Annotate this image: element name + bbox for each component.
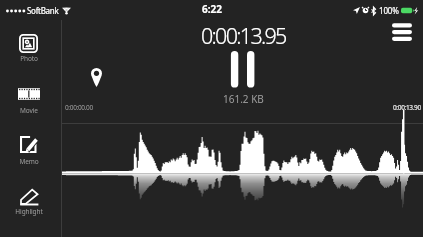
staticText: 0:00:13.90 <box>393 103 421 112</box>
button[interactable]: Photo <box>0 34 57 63</box>
button[interactable]: Memo <box>0 136 57 166</box>
staticText: Movie <box>20 106 38 115</box>
button[interactable]: Menu <box>392 21 412 42</box>
staticText: Photo <box>20 54 38 63</box>
staticText: 161.2 KB <box>223 92 264 106</box>
staticText: Memo <box>19 157 39 166</box>
staticText: 0:00:13.95 <box>201 21 286 50</box>
button[interactable]: Highlight <box>0 188 57 216</box>
staticText: 6:22 <box>202 2 222 16</box>
button[interactable]: Movie <box>0 86 57 115</box>
button[interactable]: Pause <box>228 51 258 88</box>
staticText: SoftBank <box>27 5 59 16</box>
staticText: 100% <box>379 5 399 16</box>
staticText: Highlight <box>15 207 43 216</box>
staticText: 0:00:00.00 <box>65 103 93 112</box>
